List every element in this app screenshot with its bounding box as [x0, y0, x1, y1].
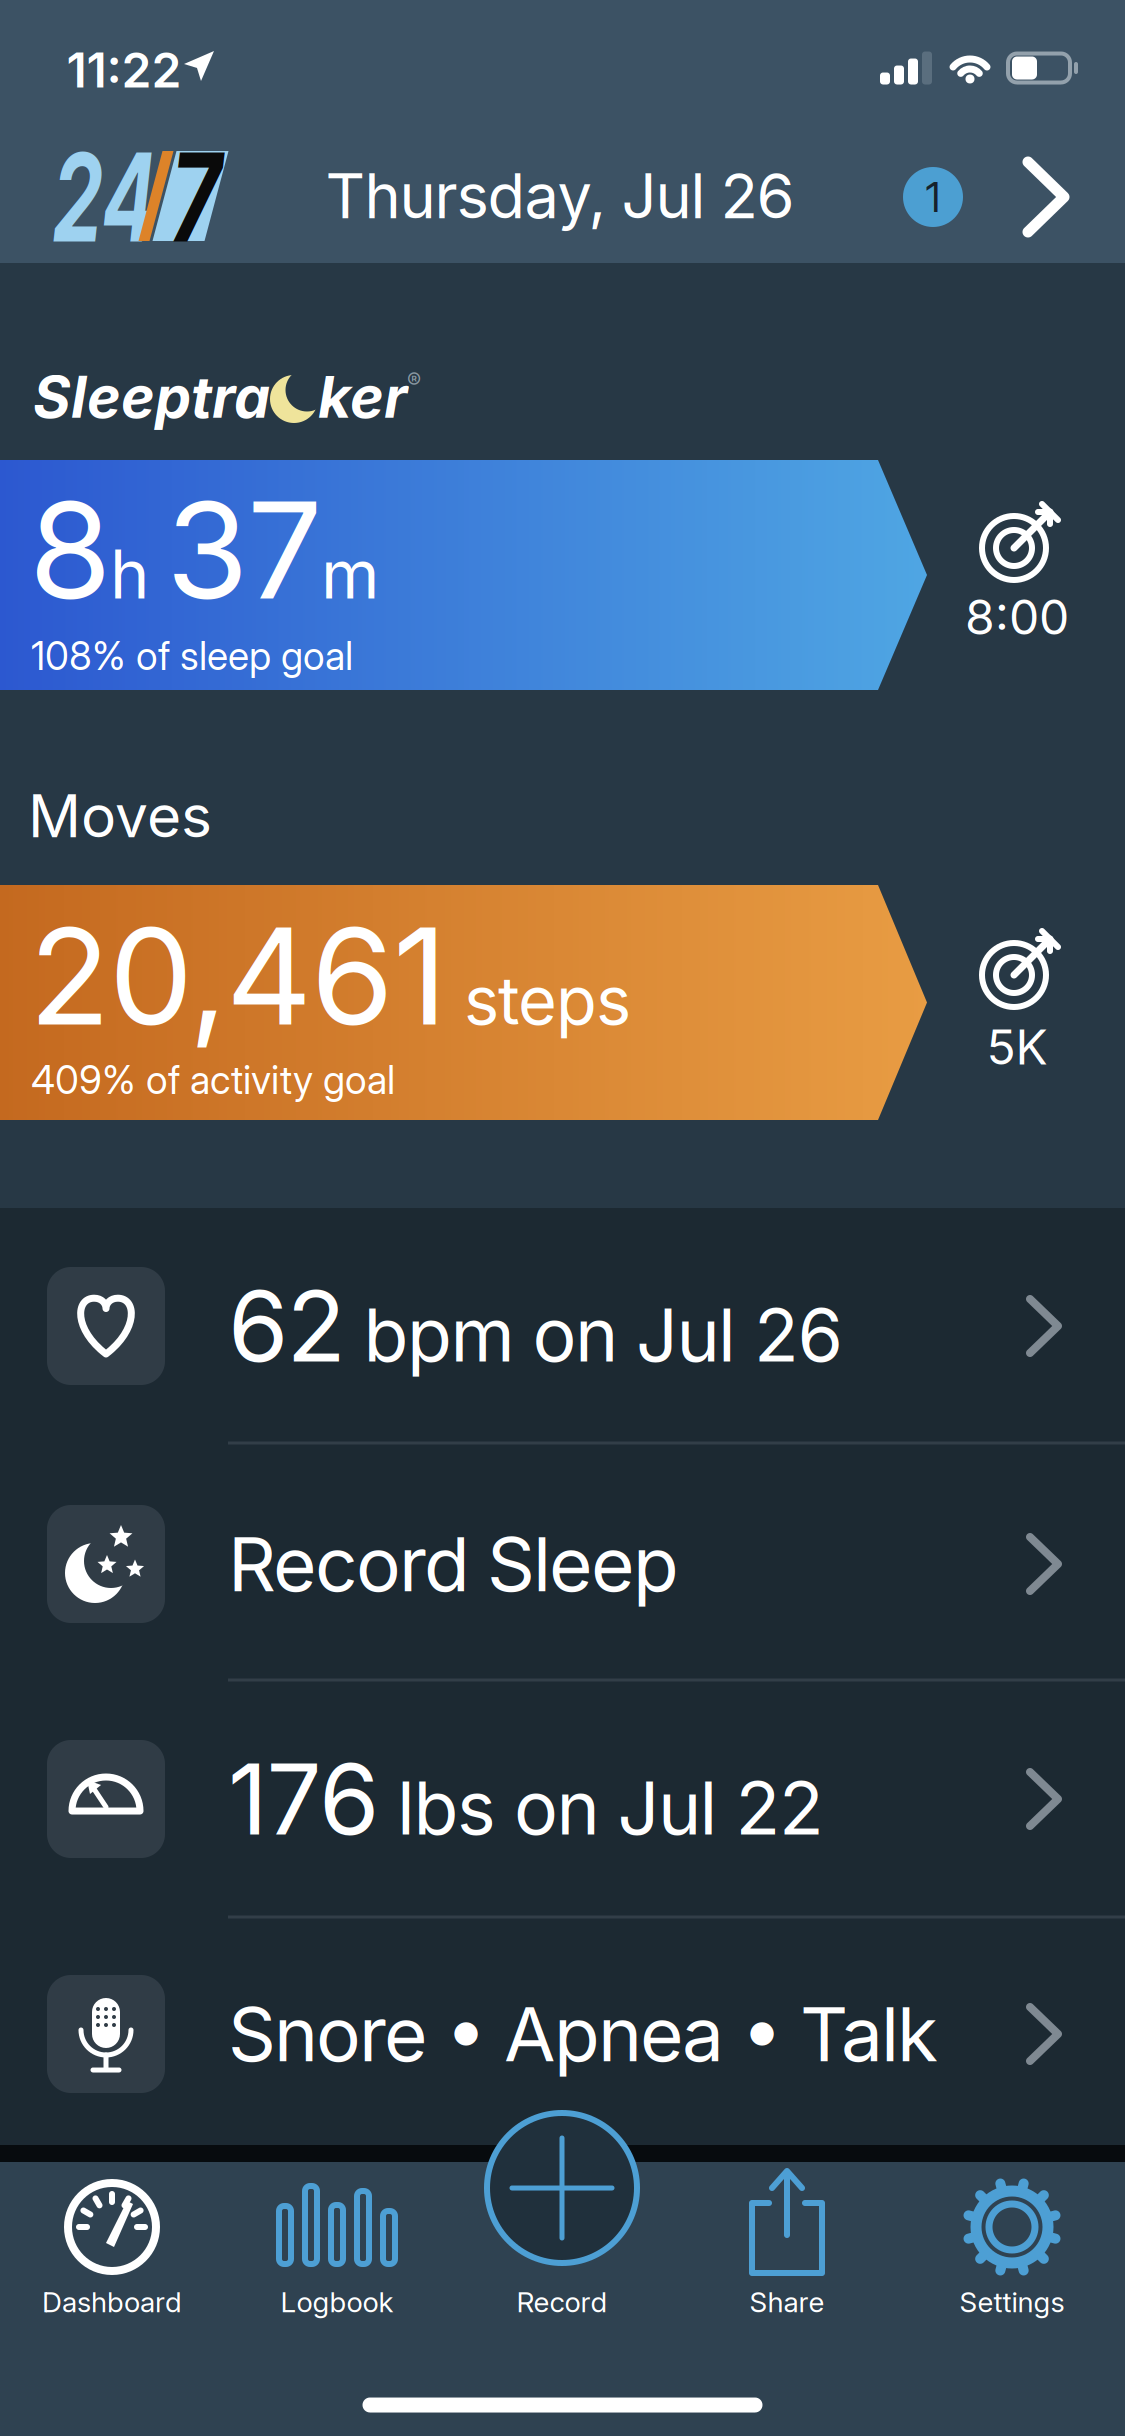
- staticText: Snore • Apnea • Talk: [228, 1990, 938, 2078]
- staticText: Record: [516, 2285, 607, 2318]
- staticText: 8:00: [965, 589, 1069, 645]
- button[interactable]: Settings: [902, 2162, 1122, 2332]
- staticText: 176 lbs on Jul 22: [228, 1742, 824, 1856]
- button[interactable]: 8h 37m: [0, 460, 927, 690]
- staticText: 409% of activity goal: [31, 1057, 395, 1103]
- staticText: Logbook: [280, 2285, 393, 2318]
- button[interactable]: 62 bpm on Jul 26: [0, 1208, 1125, 1443]
- staticText: 7: [160, 125, 231, 269]
- staticText: 62 bpm on Jul 26: [228, 1269, 842, 1383]
- staticText: Dashboard: [42, 2285, 182, 2318]
- button[interactable]: Share: [677, 2162, 897, 2332]
- staticText: 20,461 steps: [29, 897, 631, 1055]
- button[interactable]: Record Sleep: [0, 1446, 1125, 1681]
- staticText: Sleeptra: [33, 363, 270, 431]
- button[interactable]: Logbook: [227, 2162, 447, 2332]
- staticText: Moves: [28, 781, 212, 851]
- staticText: 8h 37m: [29, 471, 379, 629]
- staticText: ker: [318, 363, 407, 431]
- staticText: 1: [925, 173, 940, 221]
- button[interactable]: [1023, 157, 1069, 237]
- button[interactable]: Dashboard: [2, 2162, 222, 2332]
- staticText: 24: [25, 125, 183, 269]
- staticText: 11:22: [66, 42, 181, 98]
- button[interactable]: 176 lbs on Jul 22: [0, 1681, 1125, 1916]
- staticText: 108% of sleep goal: [31, 633, 353, 679]
- button[interactable]: 1: [903, 167, 963, 227]
- button[interactable]: [485, 2111, 639, 2265]
- staticText: Thursday, Jul 26: [325, 160, 794, 232]
- staticText: 5K: [986, 1019, 1047, 1075]
- button[interactable]: Snore • Apnea • Talk: [0, 1916, 1125, 2151]
- staticText: ®: [407, 368, 421, 394]
- staticText: Settings: [959, 2285, 1064, 2318]
- button[interactable]: 20,461 steps: [0, 885, 927, 1120]
- staticText: Record Sleep: [228, 1520, 679, 1608]
- staticText: Share: [749, 2285, 824, 2318]
